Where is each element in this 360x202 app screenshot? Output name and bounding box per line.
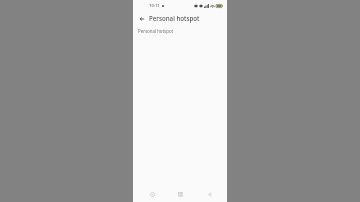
button[interactable]: Personal hotspot	[133, 25, 227, 37]
staticText: Personal hotspot	[138, 28, 174, 34]
staticText: 10:11	[149, 3, 160, 9]
button[interactable]: Recent apps	[142, 187, 162, 201]
button[interactable]: Back	[199, 187, 219, 201]
button[interactable]: Back	[136, 13, 147, 24]
button[interactable]: Home	[170, 187, 190, 201]
staticText: Personal hotspot	[149, 14, 200, 22]
